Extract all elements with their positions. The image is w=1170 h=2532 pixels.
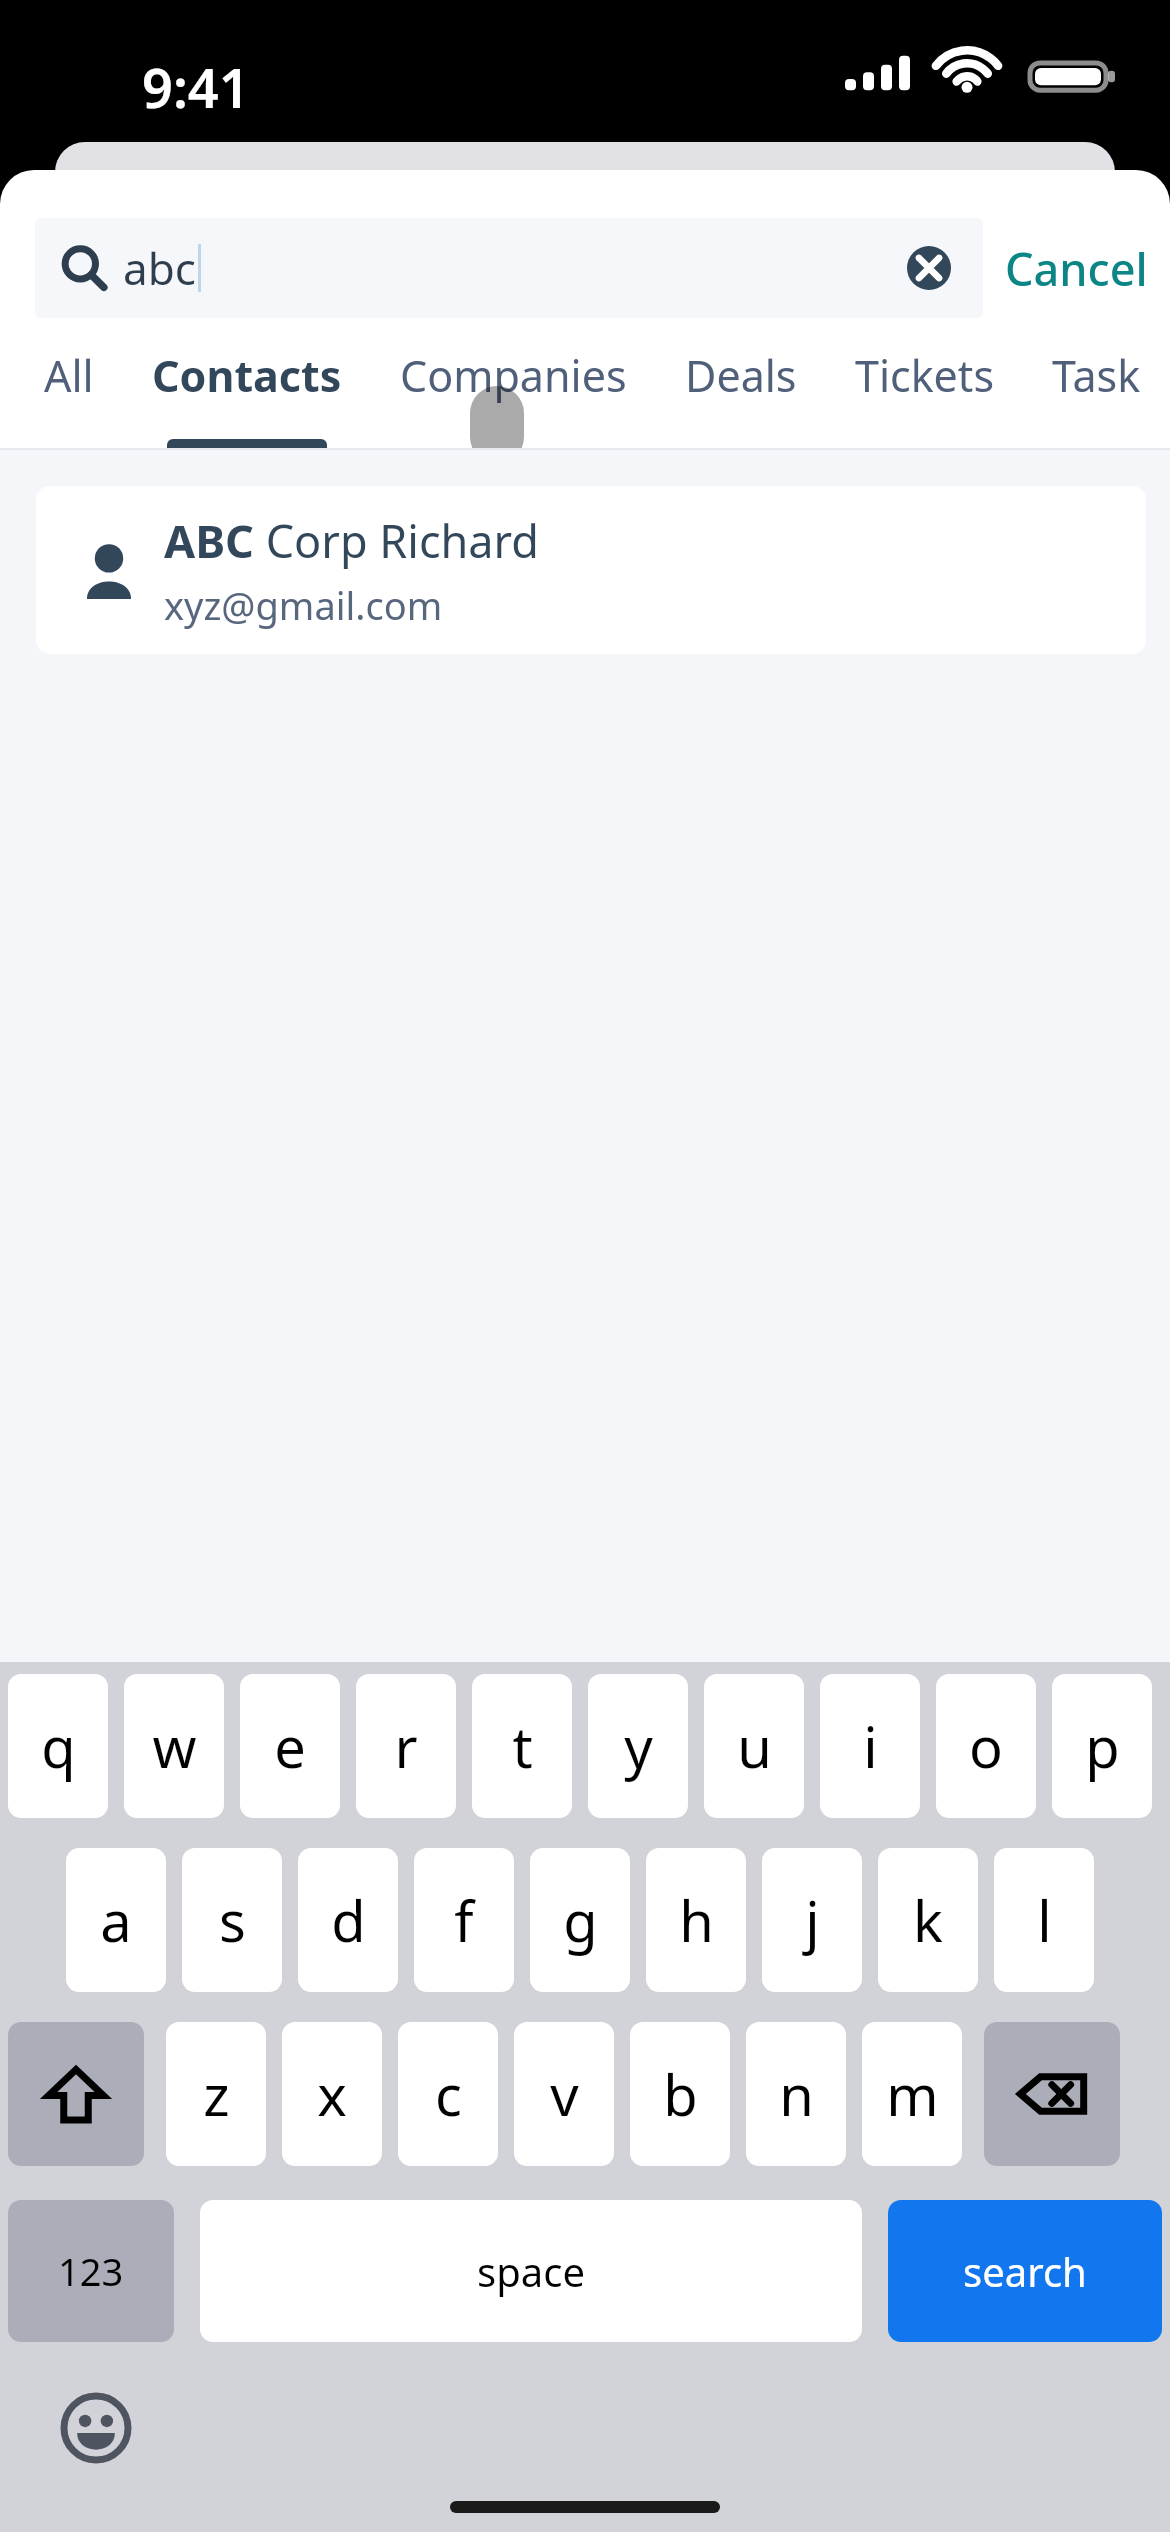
- staticText: i: [863, 1708, 878, 1784]
- staticText: w: [152, 1708, 197, 1784]
- staticText: t: [512, 1708, 533, 1784]
- button[interactable]: b: [630, 2022, 730, 2166]
- button[interactable]: v: [514, 2022, 614, 2166]
- staticText: Cancel: [1005, 238, 1148, 299]
- button[interactable]: s: [182, 1848, 282, 1992]
- staticText: Deals: [685, 346, 797, 405]
- button[interactable]: 123: [8, 2200, 174, 2342]
- staticText: k: [913, 1882, 943, 1958]
- staticText: a: [100, 1882, 132, 1958]
- button[interactable]: l: [994, 1848, 1094, 1992]
- button[interactable]: Deals: [685, 346, 797, 450]
- button[interactable]: w: [124, 1674, 224, 1818]
- button[interactable]: space: [200, 2200, 862, 2342]
- button[interactable]: Task: [1052, 346, 1141, 450]
- staticText: v: [550, 2056, 579, 2132]
- staticText: d: [331, 1882, 366, 1958]
- button[interactable]: ABC Corp Richard: [36, 486, 1146, 654]
- staticText: y: [624, 1708, 653, 1784]
- staticText: All: [44, 346, 94, 405]
- button[interactable]: Tickets: [855, 346, 994, 450]
- button[interactable]: Cancel: [983, 218, 1170, 318]
- staticText: xyz@gmail.com: [164, 579, 443, 631]
- staticText: f: [454, 1882, 474, 1958]
- button[interactable]: y: [588, 1674, 688, 1818]
- staticText: j: [805, 1882, 820, 1958]
- staticText: x: [317, 2056, 347, 2132]
- button[interactable]: g: [530, 1848, 630, 1992]
- staticText: u: [737, 1708, 772, 1784]
- button[interactable]: x: [282, 2022, 382, 2166]
- staticText: z: [203, 2056, 230, 2132]
- staticText: l: [1037, 1882, 1052, 1958]
- button[interactable]: o: [936, 1674, 1036, 1818]
- staticText: o: [969, 1708, 1003, 1784]
- staticText: h: [679, 1882, 714, 1958]
- staticText: Companies: [400, 346, 627, 405]
- button[interactable]: a: [66, 1848, 166, 1992]
- button[interactable]: i: [820, 1674, 920, 1818]
- button[interactable]: m: [862, 2022, 962, 2166]
- staticText: r: [394, 1708, 418, 1784]
- button[interactable]: z: [166, 2022, 266, 2166]
- staticText: search: [963, 2244, 1087, 2298]
- button[interactable]: Backspace: [984, 2022, 1120, 2166]
- button[interactable]: r: [356, 1674, 456, 1818]
- staticText: c: [435, 2056, 462, 2132]
- button[interactable]: c: [398, 2022, 498, 2166]
- staticText: abc: [123, 238, 196, 298]
- button[interactable]: p: [1052, 1674, 1152, 1818]
- staticText: 123: [58, 2245, 124, 2297]
- button[interactable]: search: [888, 2200, 1162, 2342]
- staticText: n: [779, 2056, 814, 2132]
- button[interactable]: q: [8, 1674, 108, 1818]
- staticText: Tickets: [855, 346, 994, 405]
- staticText: e: [274, 1708, 306, 1784]
- button[interactable]: n: [746, 2022, 846, 2166]
- staticText: 9:41: [142, 50, 250, 124]
- button[interactable]: Contacts: [152, 346, 342, 450]
- button[interactable]: Shift: [8, 2022, 144, 2166]
- staticText: space: [477, 2244, 585, 2298]
- staticText: ABC Corp Richard: [164, 510, 539, 571]
- staticText: p: [1085, 1708, 1120, 1784]
- staticText: m: [886, 2056, 939, 2132]
- button[interactable]: f: [414, 1848, 514, 1992]
- button[interactable]: Emoji keyboard: [54, 2386, 138, 2470]
- staticText: q: [41, 1708, 76, 1784]
- staticText: s: [219, 1882, 246, 1958]
- staticText: b: [663, 2056, 698, 2132]
- button[interactable]: d: [298, 1848, 398, 1992]
- staticText: Contacts: [152, 346, 342, 405]
- button[interactable]: e: [240, 1674, 340, 1818]
- button[interactable]: Companies: [400, 346, 627, 450]
- button[interactable]: t: [472, 1674, 572, 1818]
- staticText: g: [563, 1882, 598, 1958]
- button[interactable]: k: [878, 1848, 978, 1992]
- button[interactable]: u: [704, 1674, 804, 1818]
- button[interactable]: abc: [35, 218, 983, 318]
- staticText: Task: [1052, 346, 1141, 405]
- button[interactable]: j: [762, 1848, 862, 1992]
- button[interactable]: All: [44, 346, 94, 450]
- button[interactable]: h: [646, 1848, 746, 1992]
- button[interactable]: Clear search: [901, 240, 957, 296]
